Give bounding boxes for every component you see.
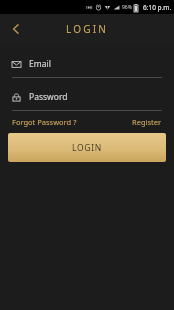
staticText: 6:10 p.m. bbox=[143, 3, 172, 12]
button[interactable]: Back bbox=[4, 17, 28, 41]
staticText: LOGIN bbox=[72, 142, 102, 154]
staticText: Email bbox=[29, 58, 51, 70]
button[interactable]: Password bbox=[0, 88, 174, 111]
staticText: 96% bbox=[122, 4, 132, 11]
button[interactable]: Register bbox=[132, 117, 162, 127]
staticText: Register bbox=[132, 117, 162, 127]
button[interactable]: Forgot Password ? bbox=[12, 117, 77, 127]
staticText: LOGIN bbox=[66, 22, 109, 36]
button[interactable]: Email bbox=[0, 55, 174, 78]
staticText: Forgot Password ? bbox=[12, 117, 77, 127]
staticText: Password bbox=[29, 91, 68, 103]
button[interactable]: LOGIN bbox=[8, 133, 166, 162]
